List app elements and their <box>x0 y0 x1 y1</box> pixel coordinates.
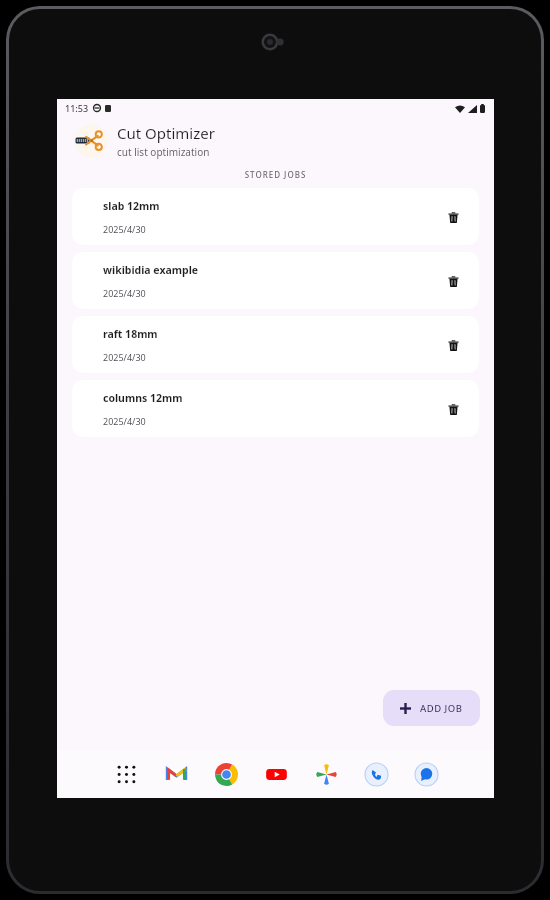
button[interactable]: raft 18mm <box>72 316 479 373</box>
button[interactable]: YouTube <box>262 760 290 788</box>
staticText: 2025/4/30 <box>103 351 146 363</box>
button[interactable]: Delete columns 12mm <box>441 397 465 421</box>
button[interactable]: Chrome <box>212 760 240 788</box>
button[interactable]: Delete raft 18mm <box>441 333 465 357</box>
button[interactable]: Delete wikibidia example <box>441 269 465 293</box>
button[interactable]: Delete slab 12mm <box>441 205 465 229</box>
staticText: STORED JOBS <box>57 169 494 180</box>
staticText: Cut Optimizer <box>117 123 215 143</box>
button[interactable]: All apps <box>112 760 140 788</box>
button[interactable]: Phone <box>362 760 390 788</box>
button[interactable]: Messages <box>412 760 440 788</box>
staticText: wikibidia example <box>103 263 199 277</box>
button[interactable]: columns 12mm <box>72 380 479 437</box>
staticText: slab 12mm <box>103 199 160 213</box>
staticText: 2025/4/30 <box>103 415 146 427</box>
button[interactable]: Gmail <box>162 760 190 788</box>
button[interactable]: slab 12mm <box>72 188 479 245</box>
staticText: 2025/4/30 <box>103 287 146 299</box>
staticText: ADD JOB <box>420 702 463 715</box>
button[interactable]: Photos <box>312 760 340 788</box>
staticText: 11:53 <box>65 102 89 114</box>
button[interactable]: wikibidia example <box>72 252 479 309</box>
staticText: 2025/4/30 <box>103 223 146 235</box>
staticText: columns 12mm <box>103 391 183 405</box>
staticText: cut list optimization <box>117 145 210 159</box>
staticText: raft 18mm <box>103 327 158 341</box>
button[interactable]: ADD JOB <box>383 690 480 726</box>
